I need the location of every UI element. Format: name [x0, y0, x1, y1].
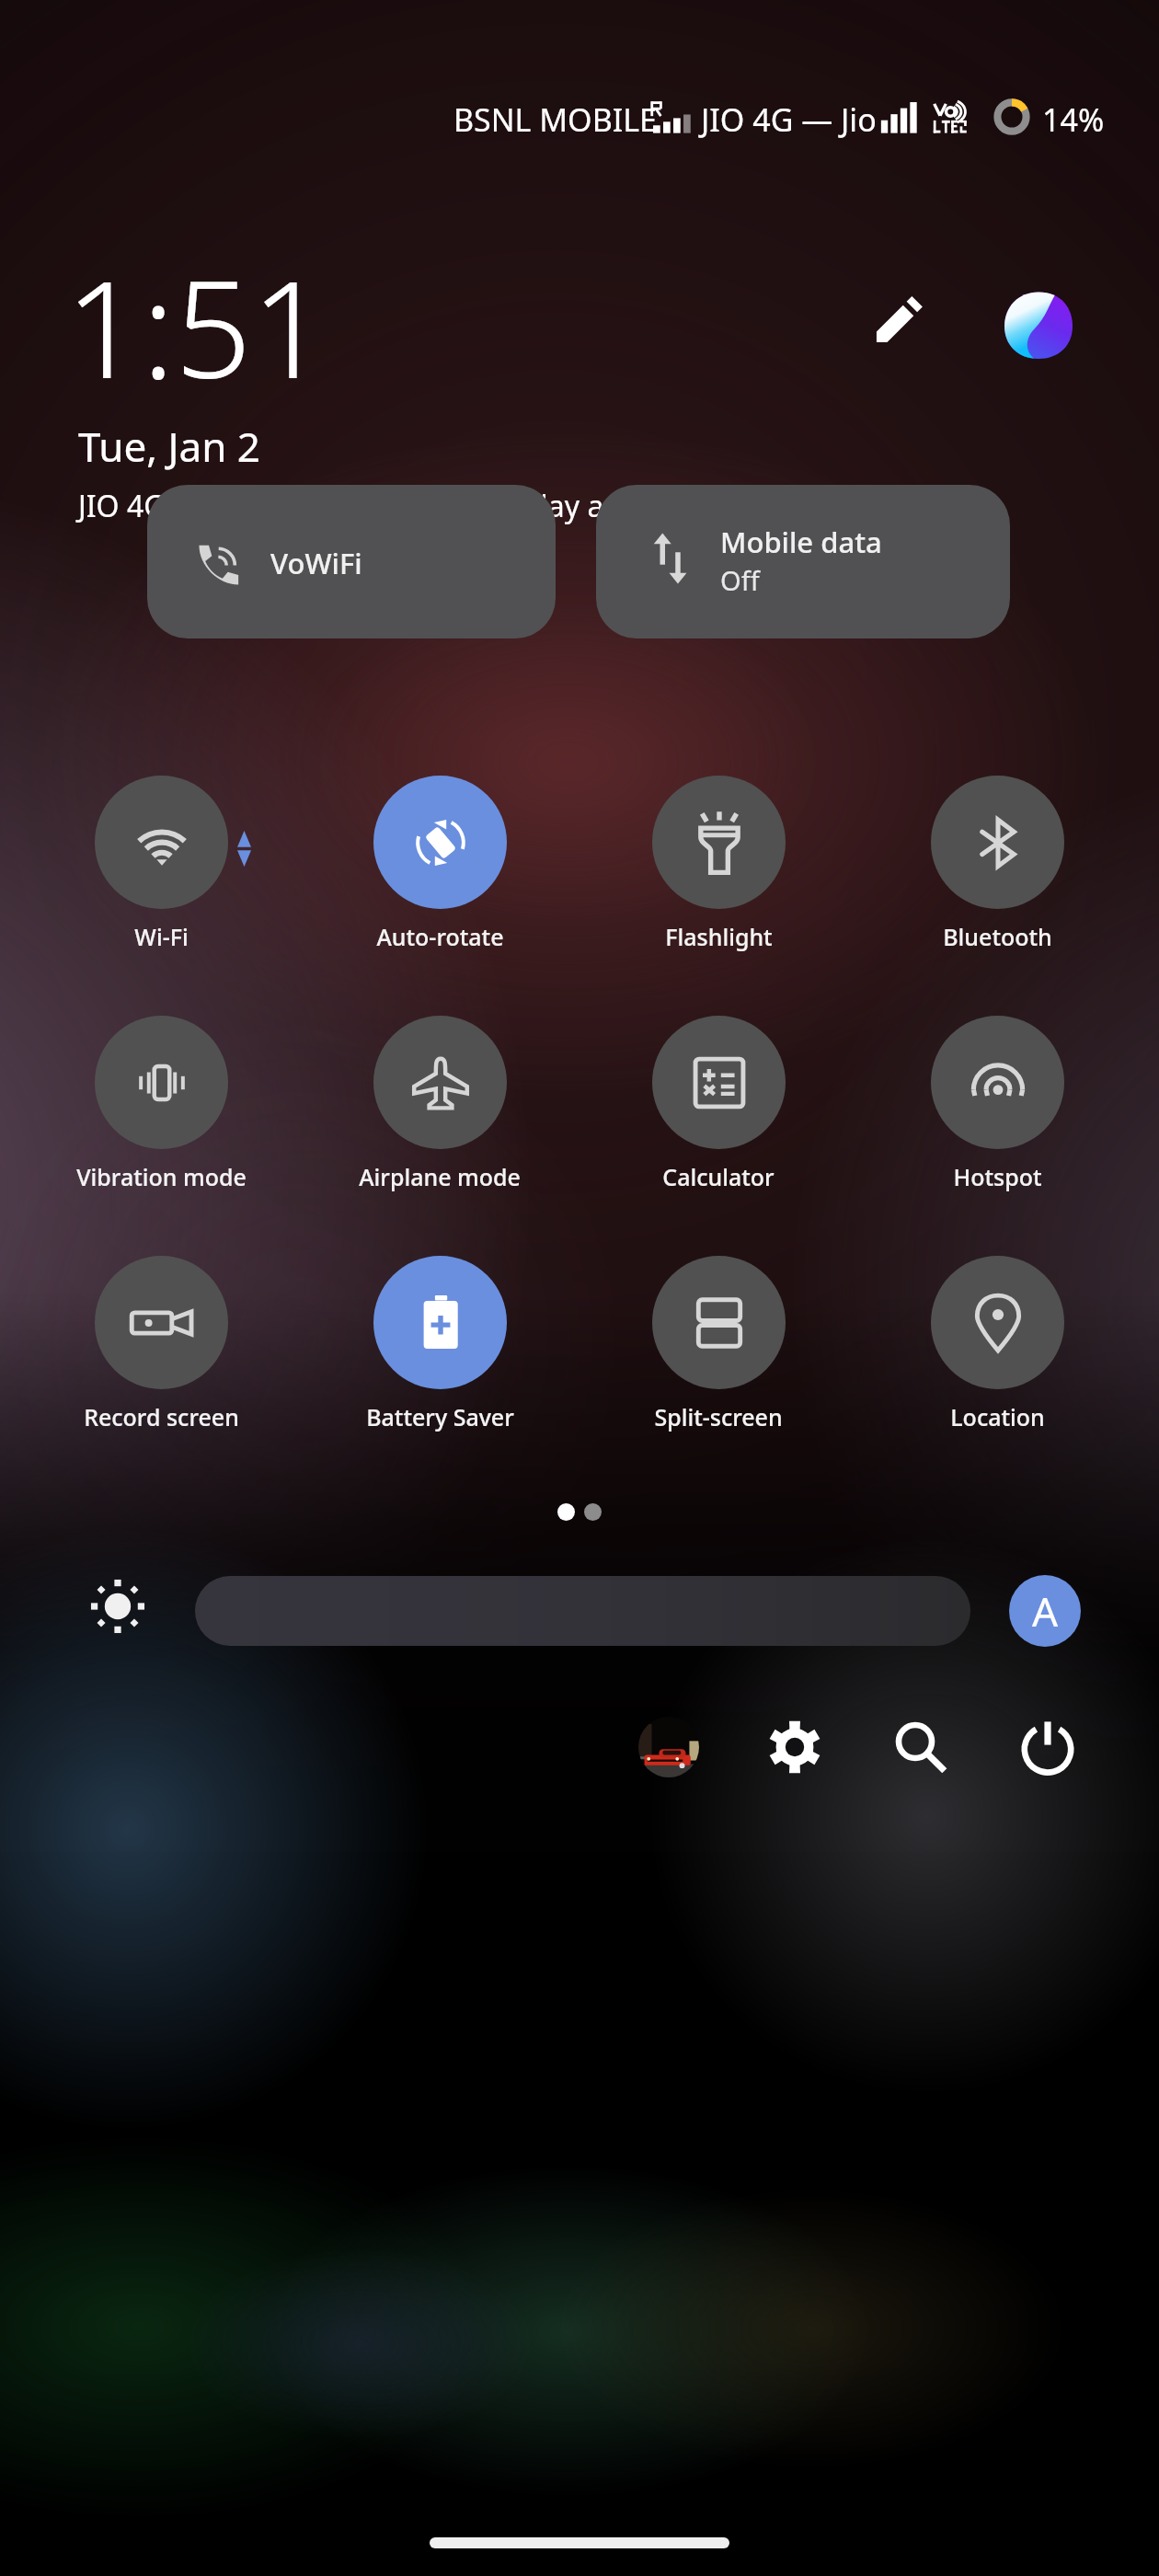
staticText: 1:51 [65, 235, 328, 418]
button[interactable] [195, 1576, 970, 1646]
staticText: JIO 4G • No internet • Showers today and… [78, 486, 786, 526]
button[interactable]: User [625, 1704, 712, 1790]
button[interactable]: Bluetooth [878, 776, 1117, 952]
button[interactable] [147, 485, 556, 638]
button[interactable]: Airplane mode [320, 1016, 559, 1192]
button[interactable]: Location [878, 1256, 1117, 1432]
staticText: Bluetooth [943, 921, 1052, 952]
button[interactable]: Calculator [599, 1016, 838, 1192]
button[interactable]: Flashlight [599, 776, 838, 952]
staticText: Wi-Fi [134, 921, 189, 952]
staticText: A [1032, 1583, 1059, 1639]
staticText: 14% [1042, 98, 1105, 141]
button[interactable]: Settings [752, 1704, 838, 1790]
staticText: VoWiFi [270, 544, 362, 582]
staticText: Battery Saver [366, 1401, 514, 1432]
staticText: Calculator [662, 1161, 775, 1192]
button[interactable]: Auto brightness [1009, 1575, 1081, 1647]
staticText: Flashlight [665, 921, 773, 952]
button[interactable]: Wi-Fi [41, 776, 281, 952]
staticText: JIO 4G — Jio [701, 98, 877, 141]
staticText: Mobile data [720, 523, 882, 561]
staticText: Vibration mode [76, 1161, 247, 1192]
staticText: Off [720, 562, 760, 598]
button[interactable]: Split-screen [599, 1256, 838, 1432]
staticText: Location [950, 1401, 1045, 1432]
staticText: Hotspot [953, 1161, 1042, 1192]
button[interactable]: Battery Saver [320, 1256, 559, 1432]
staticText: Tue, Jan 2 [78, 419, 260, 474]
button[interactable]: Record screen [41, 1256, 281, 1432]
staticText: Auto-rotate [376, 921, 504, 952]
button[interactable]: Hotspot [878, 1016, 1117, 1192]
button[interactable]: Vibration mode [41, 1016, 281, 1192]
button[interactable]: Search [878, 1704, 964, 1790]
staticText: BSNL MOBILE [453, 98, 657, 141]
staticText: Record screen [84, 1401, 239, 1432]
staticText: Split-screen [654, 1401, 783, 1432]
button[interactable]: Assistant [999, 285, 1078, 364]
button[interactable] [596, 485, 1010, 638]
staticText: Airplane mode [359, 1161, 521, 1192]
button[interactable]: Edit quick settings [855, 278, 940, 362]
button[interactable]: Power [1004, 1704, 1091, 1790]
button[interactable]: Auto-rotate [320, 776, 559, 952]
